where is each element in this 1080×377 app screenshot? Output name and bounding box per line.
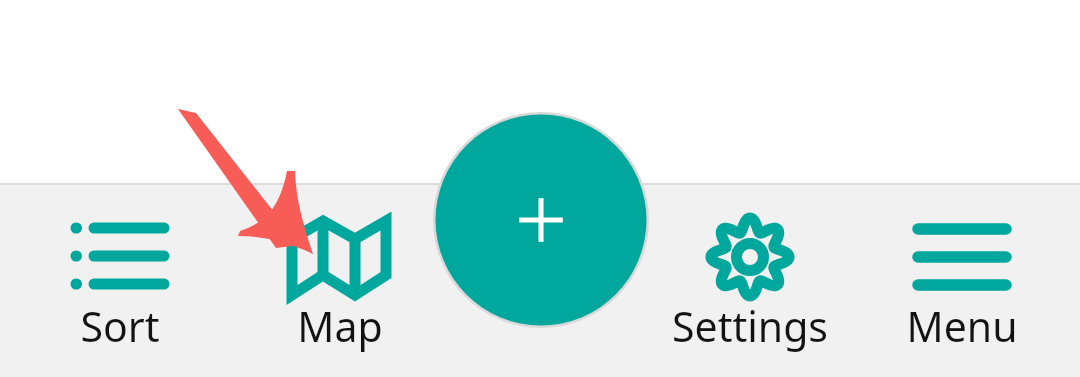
button[interactable]: Sort: [0, 185, 240, 377]
button[interactable]: Add: [433, 112, 649, 328]
button[interactable]: Settings: [645, 185, 855, 377]
button[interactable]: Menu: [860, 185, 1064, 377]
staticText: Menu: [860, 298, 1064, 354]
staticText: Sort: [0, 298, 240, 354]
staticText: Map: [240, 298, 440, 354]
button[interactable]: Map: [240, 185, 440, 377]
staticText: Settings: [645, 298, 855, 354]
